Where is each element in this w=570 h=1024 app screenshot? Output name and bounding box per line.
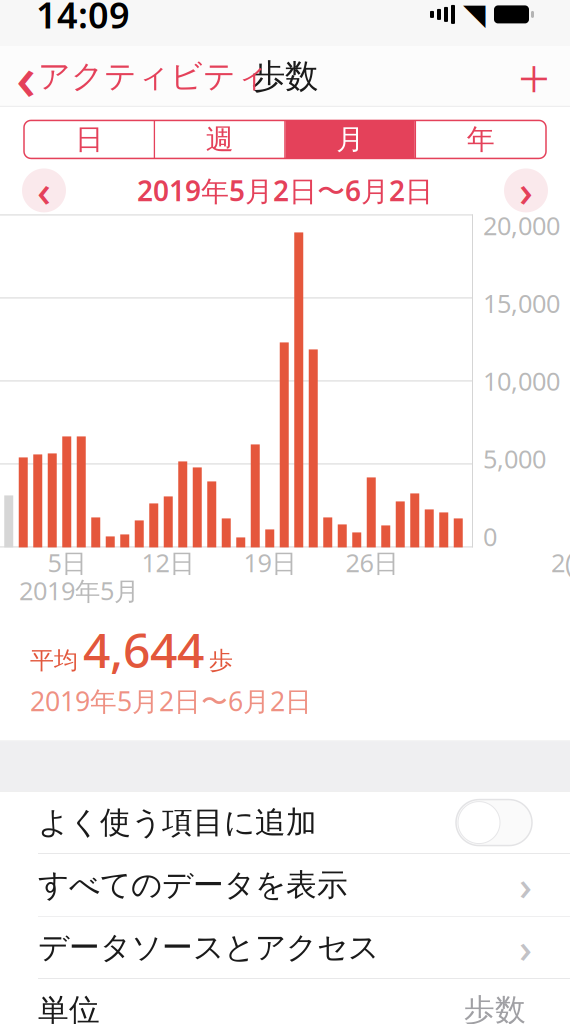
staticText: ‹ xyxy=(37,162,51,219)
staticText: 19日 xyxy=(243,546,296,579)
staticText: 20,000 xyxy=(483,209,560,242)
staticText: + xyxy=(518,39,550,114)
staticText: 2019年5月2日〜6月2日 xyxy=(137,172,433,209)
staticText: ‹ xyxy=(16,36,36,117)
staticText: 単位 xyxy=(38,991,100,1024)
staticText: 日 xyxy=(75,122,103,157)
button[interactable]: すべてのデータを表示 xyxy=(0,854,570,916)
staticText: 10,000 xyxy=(483,364,560,398)
staticText: 5,000 xyxy=(483,442,546,475)
staticText: 2( xyxy=(551,546,570,579)
staticText: › xyxy=(519,858,532,912)
staticText: › xyxy=(519,921,532,974)
staticText: 平均 xyxy=(30,646,78,675)
staticText: 2019年5月 xyxy=(19,574,139,607)
staticText: 歩数 xyxy=(252,56,318,97)
staticText: 歩 xyxy=(209,646,233,675)
staticText: 月 xyxy=(336,122,364,157)
staticText: 0 xyxy=(483,520,497,553)
staticText: データソースとアクセス xyxy=(38,929,379,966)
staticText: 2019年5月2日〜6月2日 xyxy=(30,683,312,719)
button[interactable]: データを追加 xyxy=(498,37,570,116)
button[interactable]: 次の期間 xyxy=(504,168,548,212)
button[interactable]: 月 xyxy=(286,120,415,158)
button[interactable]: 前の期間 xyxy=(22,168,66,212)
button[interactable]: 週 xyxy=(155,120,284,158)
button[interactable]: 単位 xyxy=(0,979,570,1024)
staticText: 12日 xyxy=(141,546,194,579)
staticText: すべてのデータを表示 xyxy=(38,866,348,904)
button[interactable]: よく使う項目に追加 xyxy=(0,792,570,854)
staticText: 歩数 xyxy=(464,991,526,1024)
staticText: 15,000 xyxy=(483,286,560,320)
staticText: 週 xyxy=(206,122,234,157)
staticText: › xyxy=(519,162,533,219)
button[interactable]: ‹ xyxy=(0,32,269,121)
staticText: 14:09 xyxy=(36,0,130,38)
button[interactable]: 日 xyxy=(25,120,154,158)
staticText: 4,644 xyxy=(83,617,204,681)
button[interactable]: データソースとアクセス xyxy=(0,917,570,979)
staticText: アクティビティ xyxy=(38,57,269,96)
staticText: 26日 xyxy=(345,546,398,579)
staticText: ◥ xyxy=(463,0,486,31)
button[interactable]: 年 xyxy=(416,120,545,158)
staticText: よく使う項目に追加 xyxy=(38,804,317,841)
staticText: 年 xyxy=(467,122,495,157)
staticText: 5日 xyxy=(47,546,86,579)
